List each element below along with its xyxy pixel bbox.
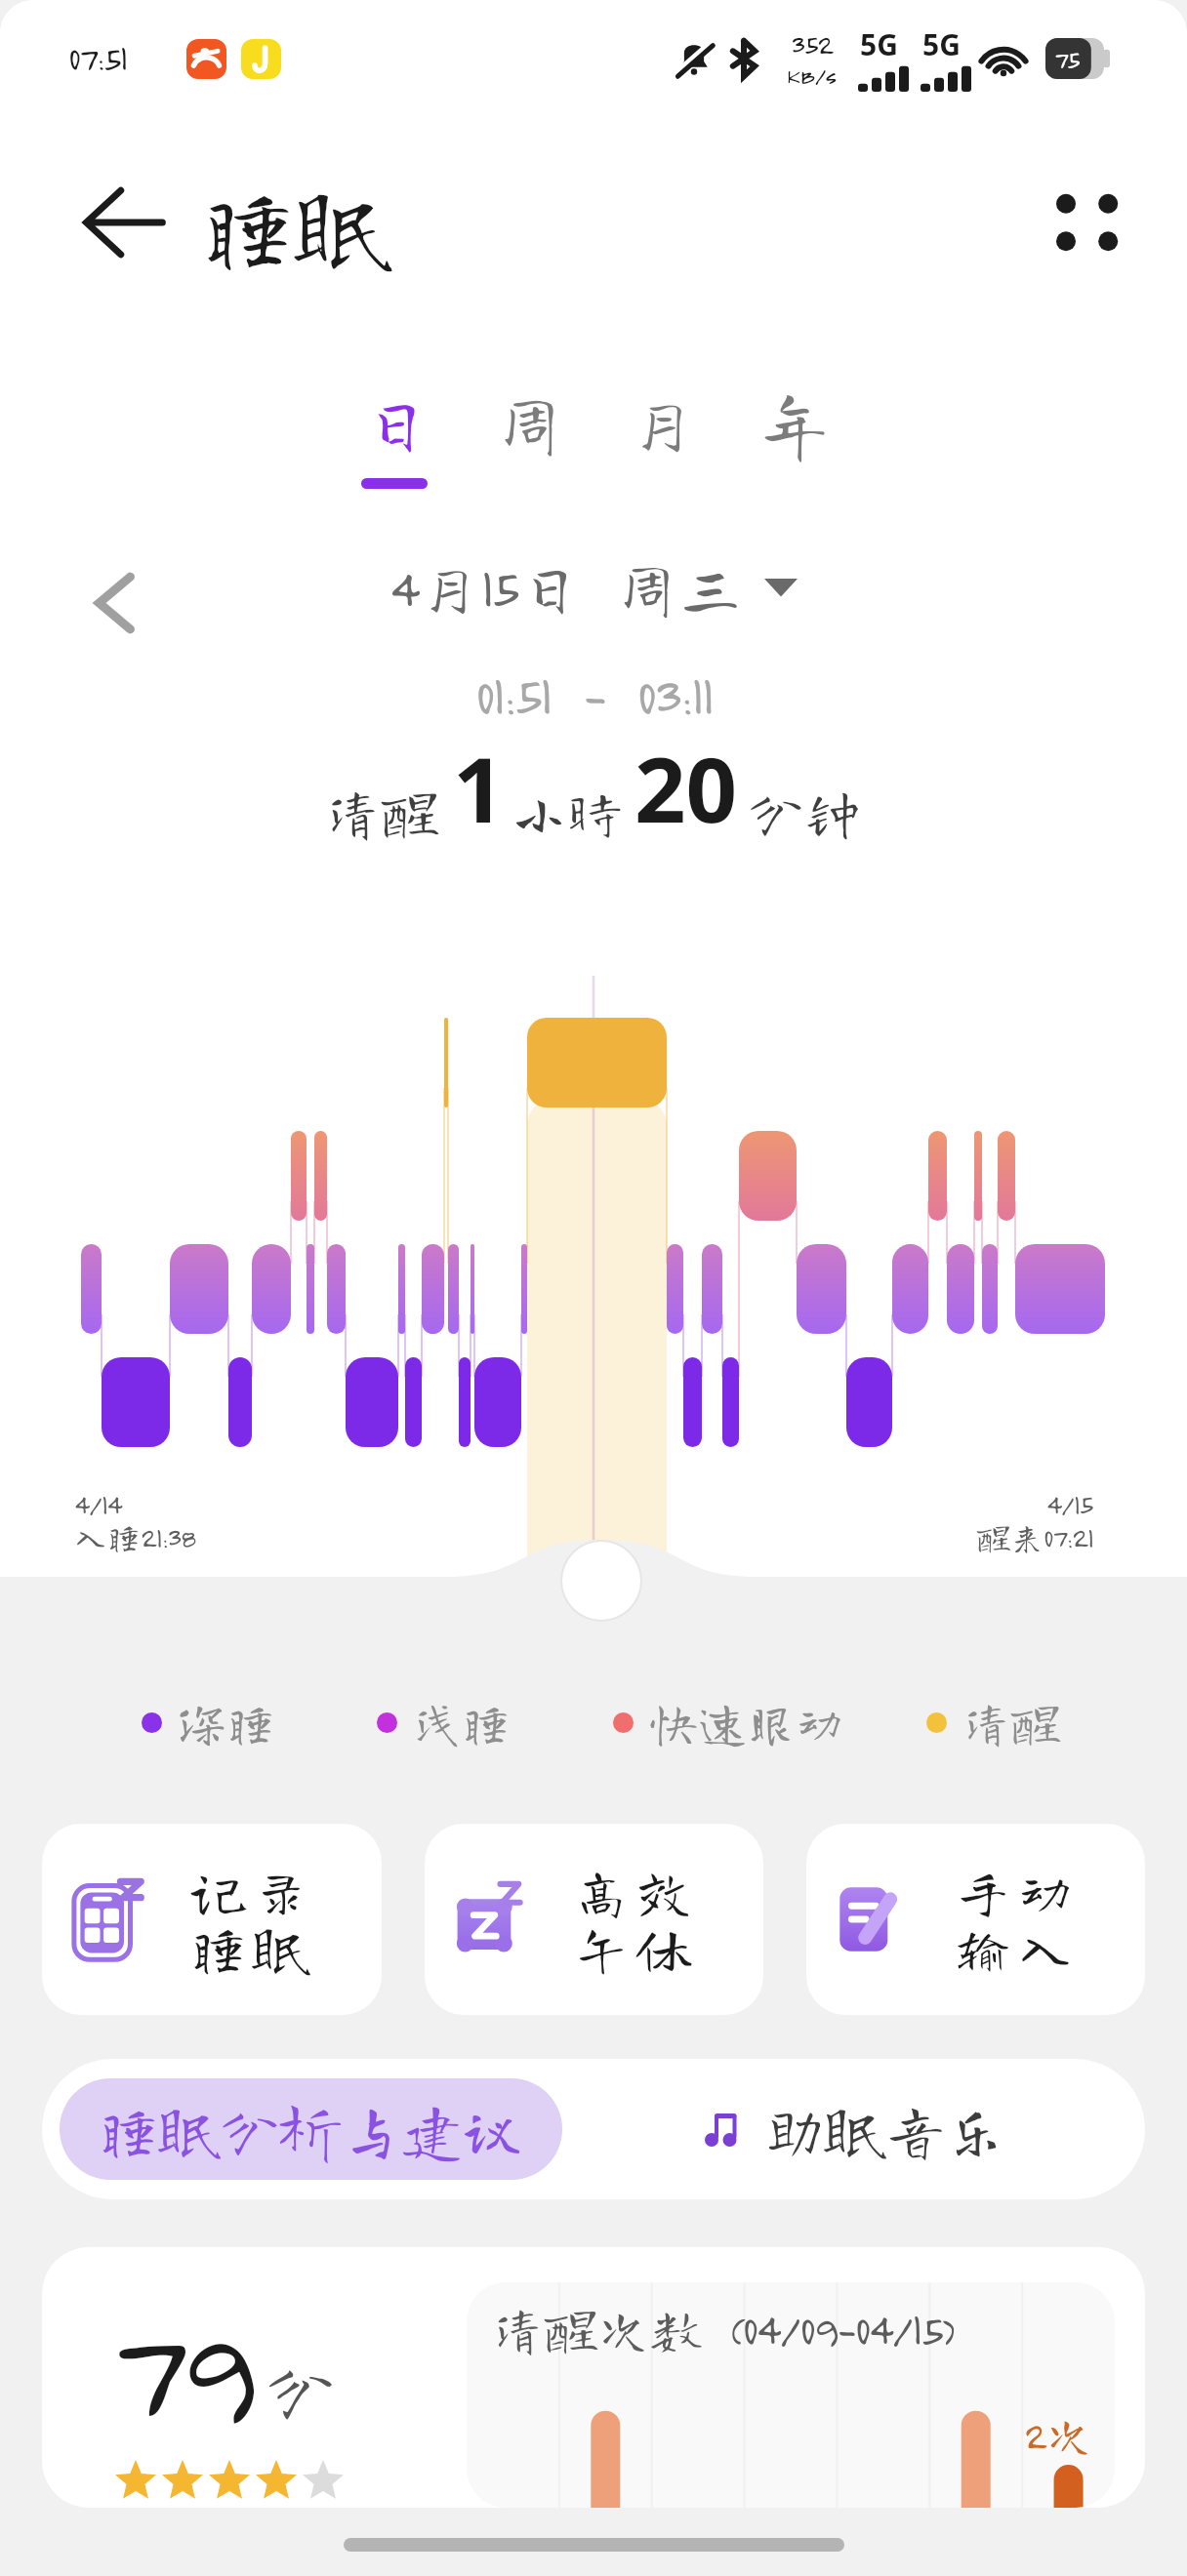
staticText: 年 — [759, 388, 826, 459]
staticText: 输入 — [955, 1919, 1081, 1976]
staticText: 2次 — [1024, 2411, 1093, 2458]
staticText: 记录 — [190, 1863, 316, 1919]
button[interactable]: 日 — [361, 388, 428, 489]
staticText: 入睡21:38 — [74, 1520, 195, 1553]
staticText: 醒来07:21 — [977, 1520, 1093, 1553]
staticText: 助眠音乐 — [764, 2099, 1007, 2159]
staticText: 75 — [1054, 44, 1080, 74]
staticText: 79 — [110, 2284, 252, 2448]
button[interactable]: 周 — [494, 388, 560, 478]
staticText: 07:51 — [68, 37, 127, 78]
staticText: 4月15日 周三 — [389, 555, 743, 620]
staticText: 分 — [266, 2355, 337, 2425]
button[interactable]: 月 — [627, 388, 693, 478]
staticText: 午休 — [573, 1919, 699, 1976]
staticText: 深睡 — [178, 1698, 275, 1747]
staticText: 清醒 — [962, 1698, 1060, 1747]
staticText: 日 — [361, 388, 428, 459]
staticText: 浅睡 — [413, 1698, 511, 1747]
button[interactable]: 高效 — [425, 1824, 763, 2015]
button[interactable]: More options — [1043, 176, 1136, 269]
staticText: 睡眠 — [190, 1919, 316, 1976]
staticText: 月 — [627, 388, 693, 459]
button[interactable]: 记录 — [42, 1824, 382, 2015]
staticText: 高效 — [573, 1863, 699, 1919]
staticText: 小时 — [511, 784, 625, 840]
staticText: 睡眠分析与建议 — [99, 2099, 523, 2159]
staticText: 5G — [860, 24, 898, 64]
staticText: 4/15 — [1046, 1487, 1093, 1520]
button[interactable]: Previous day — [76, 562, 158, 644]
button[interactable]: Back — [84, 182, 164, 262]
button[interactable]: 助眠音乐 — [562, 2059, 1145, 2199]
staticText: 快速眼动 — [649, 1698, 844, 1747]
staticText: KB/s — [787, 60, 837, 90]
button[interactable]: 睡眠分析与建议 — [60, 2078, 562, 2180]
staticText: 清醒次数 (04/09-04/15) — [492, 2302, 955, 2355]
staticText: 睡眠 — [201, 179, 390, 273]
staticText: 清醒 — [325, 784, 439, 840]
button[interactable]: 79 — [42, 2247, 1145, 2508]
staticText: 5G — [922, 24, 961, 64]
staticText: 01:51 - 03:11 — [475, 663, 713, 727]
staticText: 4/14 — [74, 1487, 121, 1520]
staticText: 分钟 — [748, 784, 862, 840]
staticText: 周 — [494, 388, 560, 459]
staticText: 1 — [453, 727, 505, 848]
staticText: 手动 — [955, 1863, 1081, 1919]
staticText: 20 — [634, 727, 738, 848]
staticText: 352 — [791, 27, 834, 60]
button[interactable]: 手动 — [806, 1824, 1145, 2015]
button[interactable]: 年 — [759, 388, 826, 478]
